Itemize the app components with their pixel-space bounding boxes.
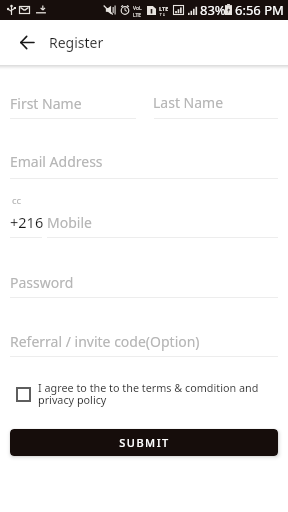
staticText: First Name [10, 94, 82, 113]
staticText: 83% [200, 1, 226, 19]
button[interactable]: First Name [10, 94, 136, 118]
staticText: Email Address [10, 152, 103, 171]
staticText: I agree to the to the terms & comdition … [38, 380, 278, 407]
staticText: cc [12, 194, 22, 207]
staticText: Mobile [47, 213, 92, 232]
button[interactable]: Password [10, 273, 278, 297]
staticText: LTE [159, 5, 169, 12]
button[interactable]: Last Name [153, 93, 278, 117]
staticText: +216 [10, 212, 44, 232]
button[interactable]: Email Address [10, 152, 278, 176]
button[interactable]: Back [8, 23, 46, 61]
button[interactable]: Referral / invite code(Option) [10, 332, 278, 356]
staticText: Last Name [153, 93, 224, 112]
staticText: SUBMIT [119, 435, 170, 450]
staticText: VoL [133, 5, 142, 12]
button[interactable]: Mobile [47, 213, 278, 237]
button[interactable]: +216 [10, 212, 44, 236]
button[interactable]: I agree to the to the terms & comdition … [10, 380, 278, 412]
staticText: Password [10, 273, 74, 292]
button[interactable]: SUBMIT [10, 429, 278, 456]
staticText: Register [49, 33, 104, 52]
staticText: LTE [133, 12, 142, 19]
staticText: 6:56 PM [235, 1, 284, 19]
staticText: Referral / invite code(Option) [10, 332, 200, 351]
staticText: ↑↓ [159, 12, 166, 17]
